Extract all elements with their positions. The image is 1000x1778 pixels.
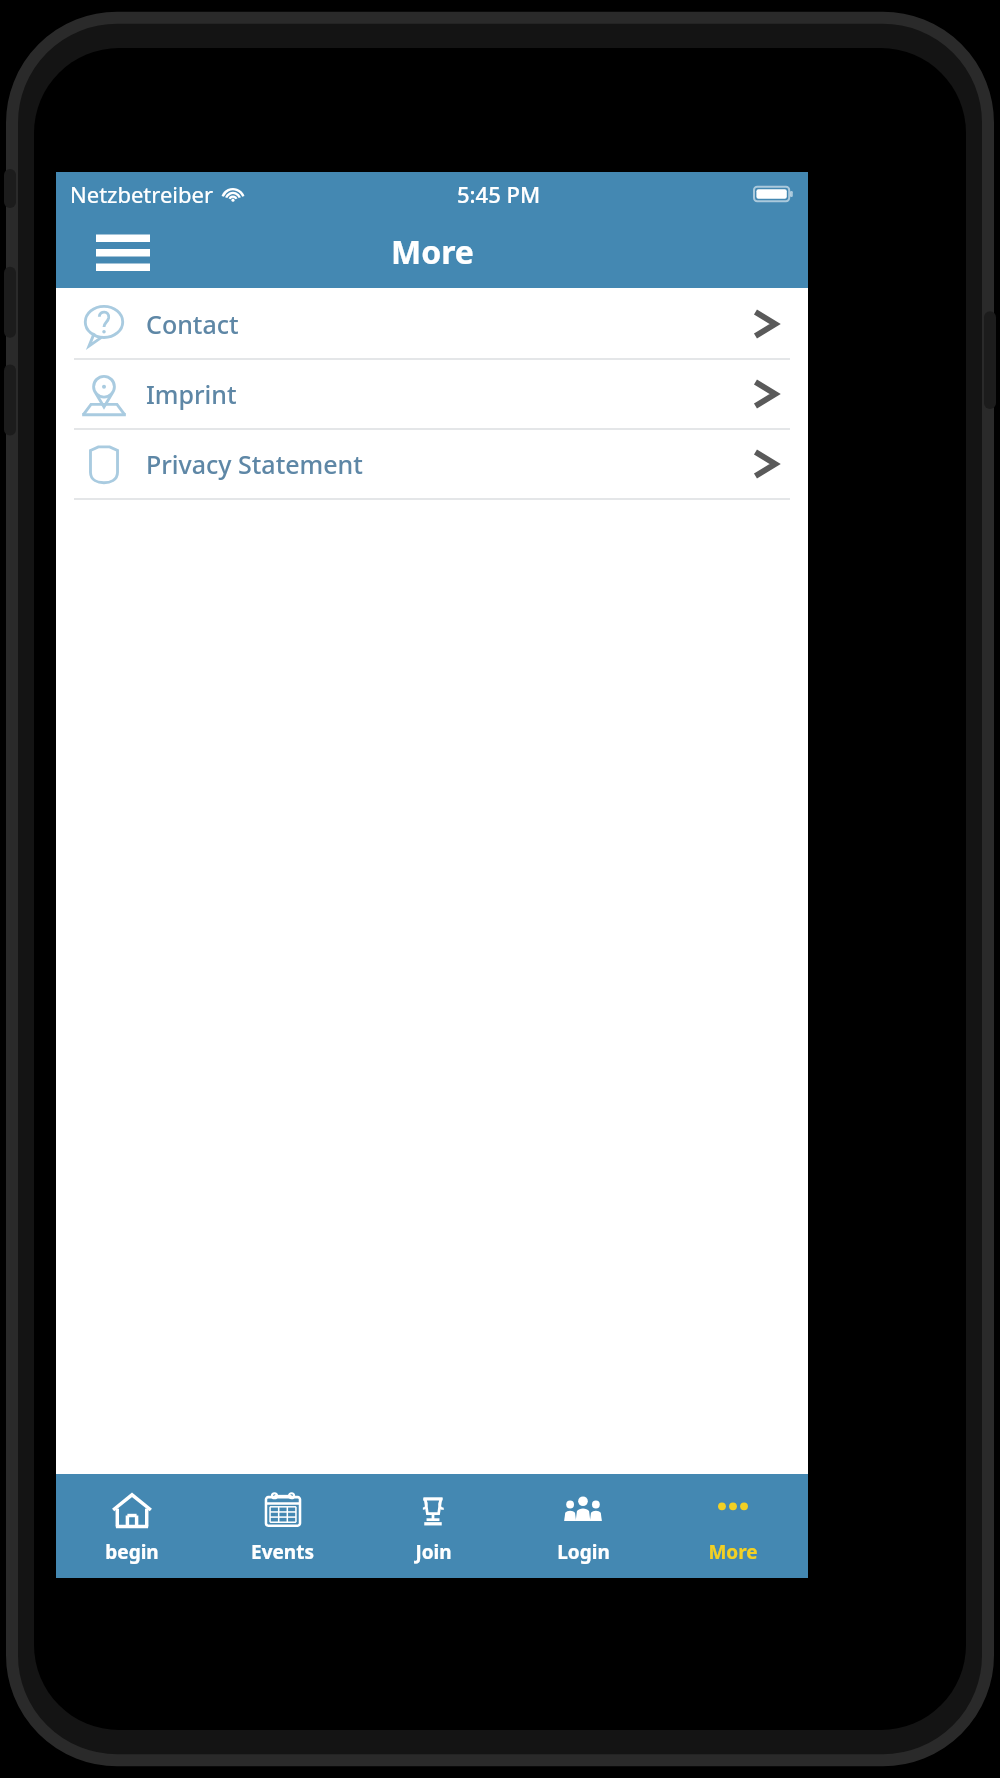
button[interactable]: Events	[207, 1474, 358, 1578]
button[interactable]: Join	[358, 1474, 508, 1578]
staticText: Events	[251, 1539, 314, 1565]
staticText: begin	[105, 1539, 159, 1565]
button[interactable]: Login	[508, 1474, 658, 1578]
staticText: More	[391, 230, 474, 274]
staticText: Imprint	[146, 377, 237, 411]
button[interactable]: Menu	[92, 226, 154, 278]
staticText: 5:45 PM	[457, 179, 541, 209]
staticText: Join	[415, 1539, 452, 1565]
staticText: Login	[557, 1539, 610, 1565]
button[interactable]: Contact	[56, 290, 808, 358]
staticText: Netzbetreiber	[70, 179, 214, 209]
button[interactable]: More	[658, 1474, 808, 1578]
staticText: Privacy Statement	[146, 447, 363, 481]
staticText: More	[708, 1539, 758, 1565]
button[interactable]: begin	[56, 1474, 207, 1578]
button[interactable]: Privacy Statement	[56, 430, 808, 498]
button[interactable]: Imprint	[56, 360, 808, 428]
staticText: Contact	[146, 307, 239, 341]
